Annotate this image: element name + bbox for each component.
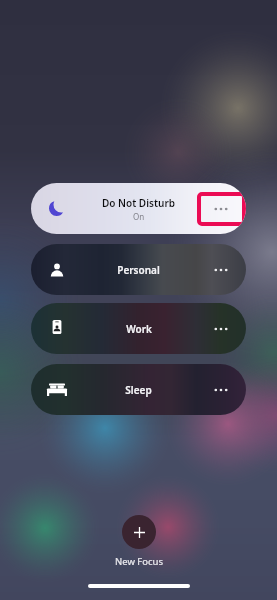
staticText: Personal [117, 263, 160, 277]
button[interactable]: Work [31, 303, 246, 354]
button[interactable]: More options [195, 303, 246, 354]
staticText: New Focus [115, 555, 163, 568]
button[interactable]: More options [195, 364, 246, 415]
button[interactable]: More options [195, 244, 246, 295]
staticText: Work [126, 322, 152, 336]
button[interactable]: Personal [31, 244, 246, 295]
button[interactable]: More options [195, 183, 246, 234]
button[interactable]: New Focus [122, 515, 156, 549]
staticText: Do Not Disturb [102, 196, 175, 210]
button[interactable]: Sleep [31, 364, 246, 415]
staticText: Sleep [125, 383, 152, 397]
button[interactable]: Do Not Disturb [31, 183, 246, 234]
staticText: On [133, 211, 145, 222]
